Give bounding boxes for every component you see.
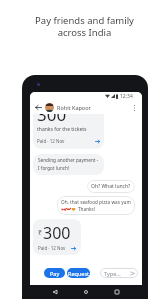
button[interactable]: Type... [100,268,138,278]
staticText: ₹ [38,228,43,238]
staticText: Oh, that seafood pizza was yum [61,199,131,205]
staticText: Pay friends and family across India [35,14,134,38]
staticText: Paid · 12 Nov [37,138,65,144]
button[interactable]: Request [67,268,90,278]
button[interactable]: Recents [111,286,123,298]
button[interactable]: Back [33,102,44,113]
button[interactable]: 300 [33,114,104,149]
staticText: Rohit Kapoor [57,104,91,111]
button[interactable]: More options [129,102,140,113]
staticText: Type... [104,270,121,277]
staticText: Paid · 12 Nov [38,245,66,251]
staticText: Sending another payment - I forgot lunch… [38,157,99,172]
button[interactable]: Home [80,286,92,298]
button[interactable]: ₹ [33,219,81,255]
staticText: Pay [50,270,60,277]
staticText: 300 [37,114,67,126]
button[interactable]: Pay [44,268,65,278]
staticText: 300 [43,222,71,244]
staticText: thanks for the tickets [37,126,87,133]
staticText: Request [68,270,90,277]
button[interactable]: Back [49,286,61,298]
staticText: Oh? What lunch? [91,183,131,190]
staticText: Thanks! [78,206,96,212]
staticText: 12:34 [120,93,133,100]
